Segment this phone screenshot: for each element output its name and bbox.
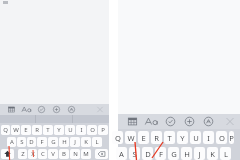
- button[interactable]: K: [81, 137, 91, 147]
- staticText: W: [13, 126, 19, 134]
- button[interactable]: B: [59, 149, 69, 159]
- staticText: N: [73, 150, 78, 158]
- button[interactable]: F: [37, 137, 47, 147]
- button[interactable]: D: [142, 147, 153, 160]
- button[interactable]: W: [125, 131, 136, 144]
- staticText: A: [119, 149, 124, 159]
- staticText: H: [62, 138, 67, 146]
- button[interactable]: E: [21, 125, 31, 135]
- staticText: L: [95, 138, 99, 146]
- button[interactable]: U: [190, 131, 201, 144]
- button[interactable]: H: [59, 137, 69, 147]
- button[interactable]: Formatting grid: [4, 104, 19, 115]
- staticText: D: [29, 138, 34, 146]
- button[interactable]: Add: [180, 114, 199, 129]
- staticText: U: [193, 133, 199, 143]
- button[interactable]: M: [81, 149, 91, 159]
- staticText: Q: [3, 126, 8, 134]
- button[interactable]: J: [70, 137, 80, 147]
- button[interactable]: Markup: [64, 104, 79, 115]
- button[interactable]: V: [48, 149, 58, 159]
- staticText: A: [10, 138, 14, 146]
- button[interactable]: S: [129, 147, 140, 160]
- staticText: J: [198, 149, 201, 159]
- button[interactable]: O: [87, 125, 97, 135]
- button[interactable]: J: [194, 147, 205, 160]
- button[interactable]: Shift: [1, 149, 14, 159]
- button[interactable]: Y: [54, 125, 64, 135]
- staticText: D: [145, 149, 151, 159]
- button[interactable]: D: [27, 137, 36, 147]
- button[interactable]: N: [70, 149, 80, 159]
- button[interactable]: P: [98, 125, 108, 135]
- button[interactable]: G: [168, 147, 179, 160]
- button[interactable]: R: [151, 131, 162, 144]
- button[interactable]: L: [92, 137, 102, 147]
- staticText: T: [46, 126, 50, 134]
- staticText: S: [132, 149, 137, 159]
- button[interactable]: A: [7, 137, 16, 147]
- button[interactable]: T: [43, 125, 53, 135]
- button[interactable]: U: [65, 125, 75, 135]
- button[interactable]: A: [116, 147, 127, 160]
- button[interactable]: W: [11, 125, 20, 135]
- button[interactable]: L: [220, 147, 231, 160]
- staticText: H: [184, 149, 190, 159]
- staticText: K: [84, 138, 88, 146]
- staticText: P: [229, 133, 234, 143]
- staticText: Y: [57, 126, 61, 134]
- button[interactable]: Check: [161, 114, 180, 129]
- staticText: G: [51, 138, 56, 146]
- button[interactable]: Markup: [199, 114, 218, 129]
- button[interactable]: Add: [49, 104, 64, 115]
- staticText: G: [171, 149, 177, 159]
- staticText: Q: [115, 133, 121, 143]
- staticText: U: [68, 126, 73, 134]
- staticText: T: [167, 133, 172, 143]
- button[interactable]: K: [207, 147, 218, 160]
- button[interactable]: Q: [112, 131, 123, 144]
- button[interactable]: Text style: [142, 114, 161, 129]
- button[interactable]: Check: [34, 104, 49, 115]
- staticText: X: [31, 150, 35, 158]
- button[interactable]: Z: [18, 149, 27, 159]
- staticText: S: [20, 138, 24, 146]
- button[interactable]: C: [38, 149, 47, 159]
- staticText: P: [101, 126, 105, 134]
- staticText: I: [80, 126, 83, 134]
- staticText: F: [159, 149, 163, 159]
- staticText: I: [207, 133, 210, 143]
- staticText: V: [51, 150, 55, 158]
- button[interactable]: E: [138, 131, 149, 144]
- staticText: C: [41, 150, 45, 158]
- button[interactable]: R: [32, 125, 42, 135]
- button[interactable]: Y: [177, 131, 188, 144]
- button[interactable]: H: [181, 147, 192, 160]
- button[interactable]: T: [164, 131, 175, 144]
- button[interactable]: Close keyboard: [222, 114, 238, 129]
- button[interactable]: I: [203, 131, 214, 144]
- button[interactable]: X: [28, 149, 37, 159]
- button[interactable]: Text style: [19, 104, 34, 115]
- button[interactable]: Close keyboard: [93, 104, 107, 115]
- staticText: O: [219, 133, 225, 143]
- button[interactable]: Formatting grid: [123, 114, 142, 129]
- button[interactable]: P: [229, 131, 234, 144]
- staticText: R: [154, 133, 159, 143]
- staticText: O: [90, 126, 95, 134]
- button[interactable]: O: [216, 131, 227, 144]
- staticText: R: [35, 126, 39, 134]
- staticText: E: [141, 133, 146, 143]
- button[interactable]: S: [17, 137, 26, 147]
- staticText: F: [40, 138, 44, 146]
- staticText: W: [127, 133, 135, 143]
- button[interactable]: Backspace: [95, 149, 108, 159]
- staticText: Y: [180, 133, 185, 143]
- staticText: K: [210, 149, 215, 159]
- button[interactable]: I: [76, 125, 86, 135]
- staticText: J: [74, 138, 76, 146]
- staticText: B: [62, 150, 66, 158]
- button[interactable]: G: [48, 137, 58, 147]
- button[interactable]: F: [155, 147, 166, 160]
- button[interactable]: Q: [1, 125, 10, 135]
